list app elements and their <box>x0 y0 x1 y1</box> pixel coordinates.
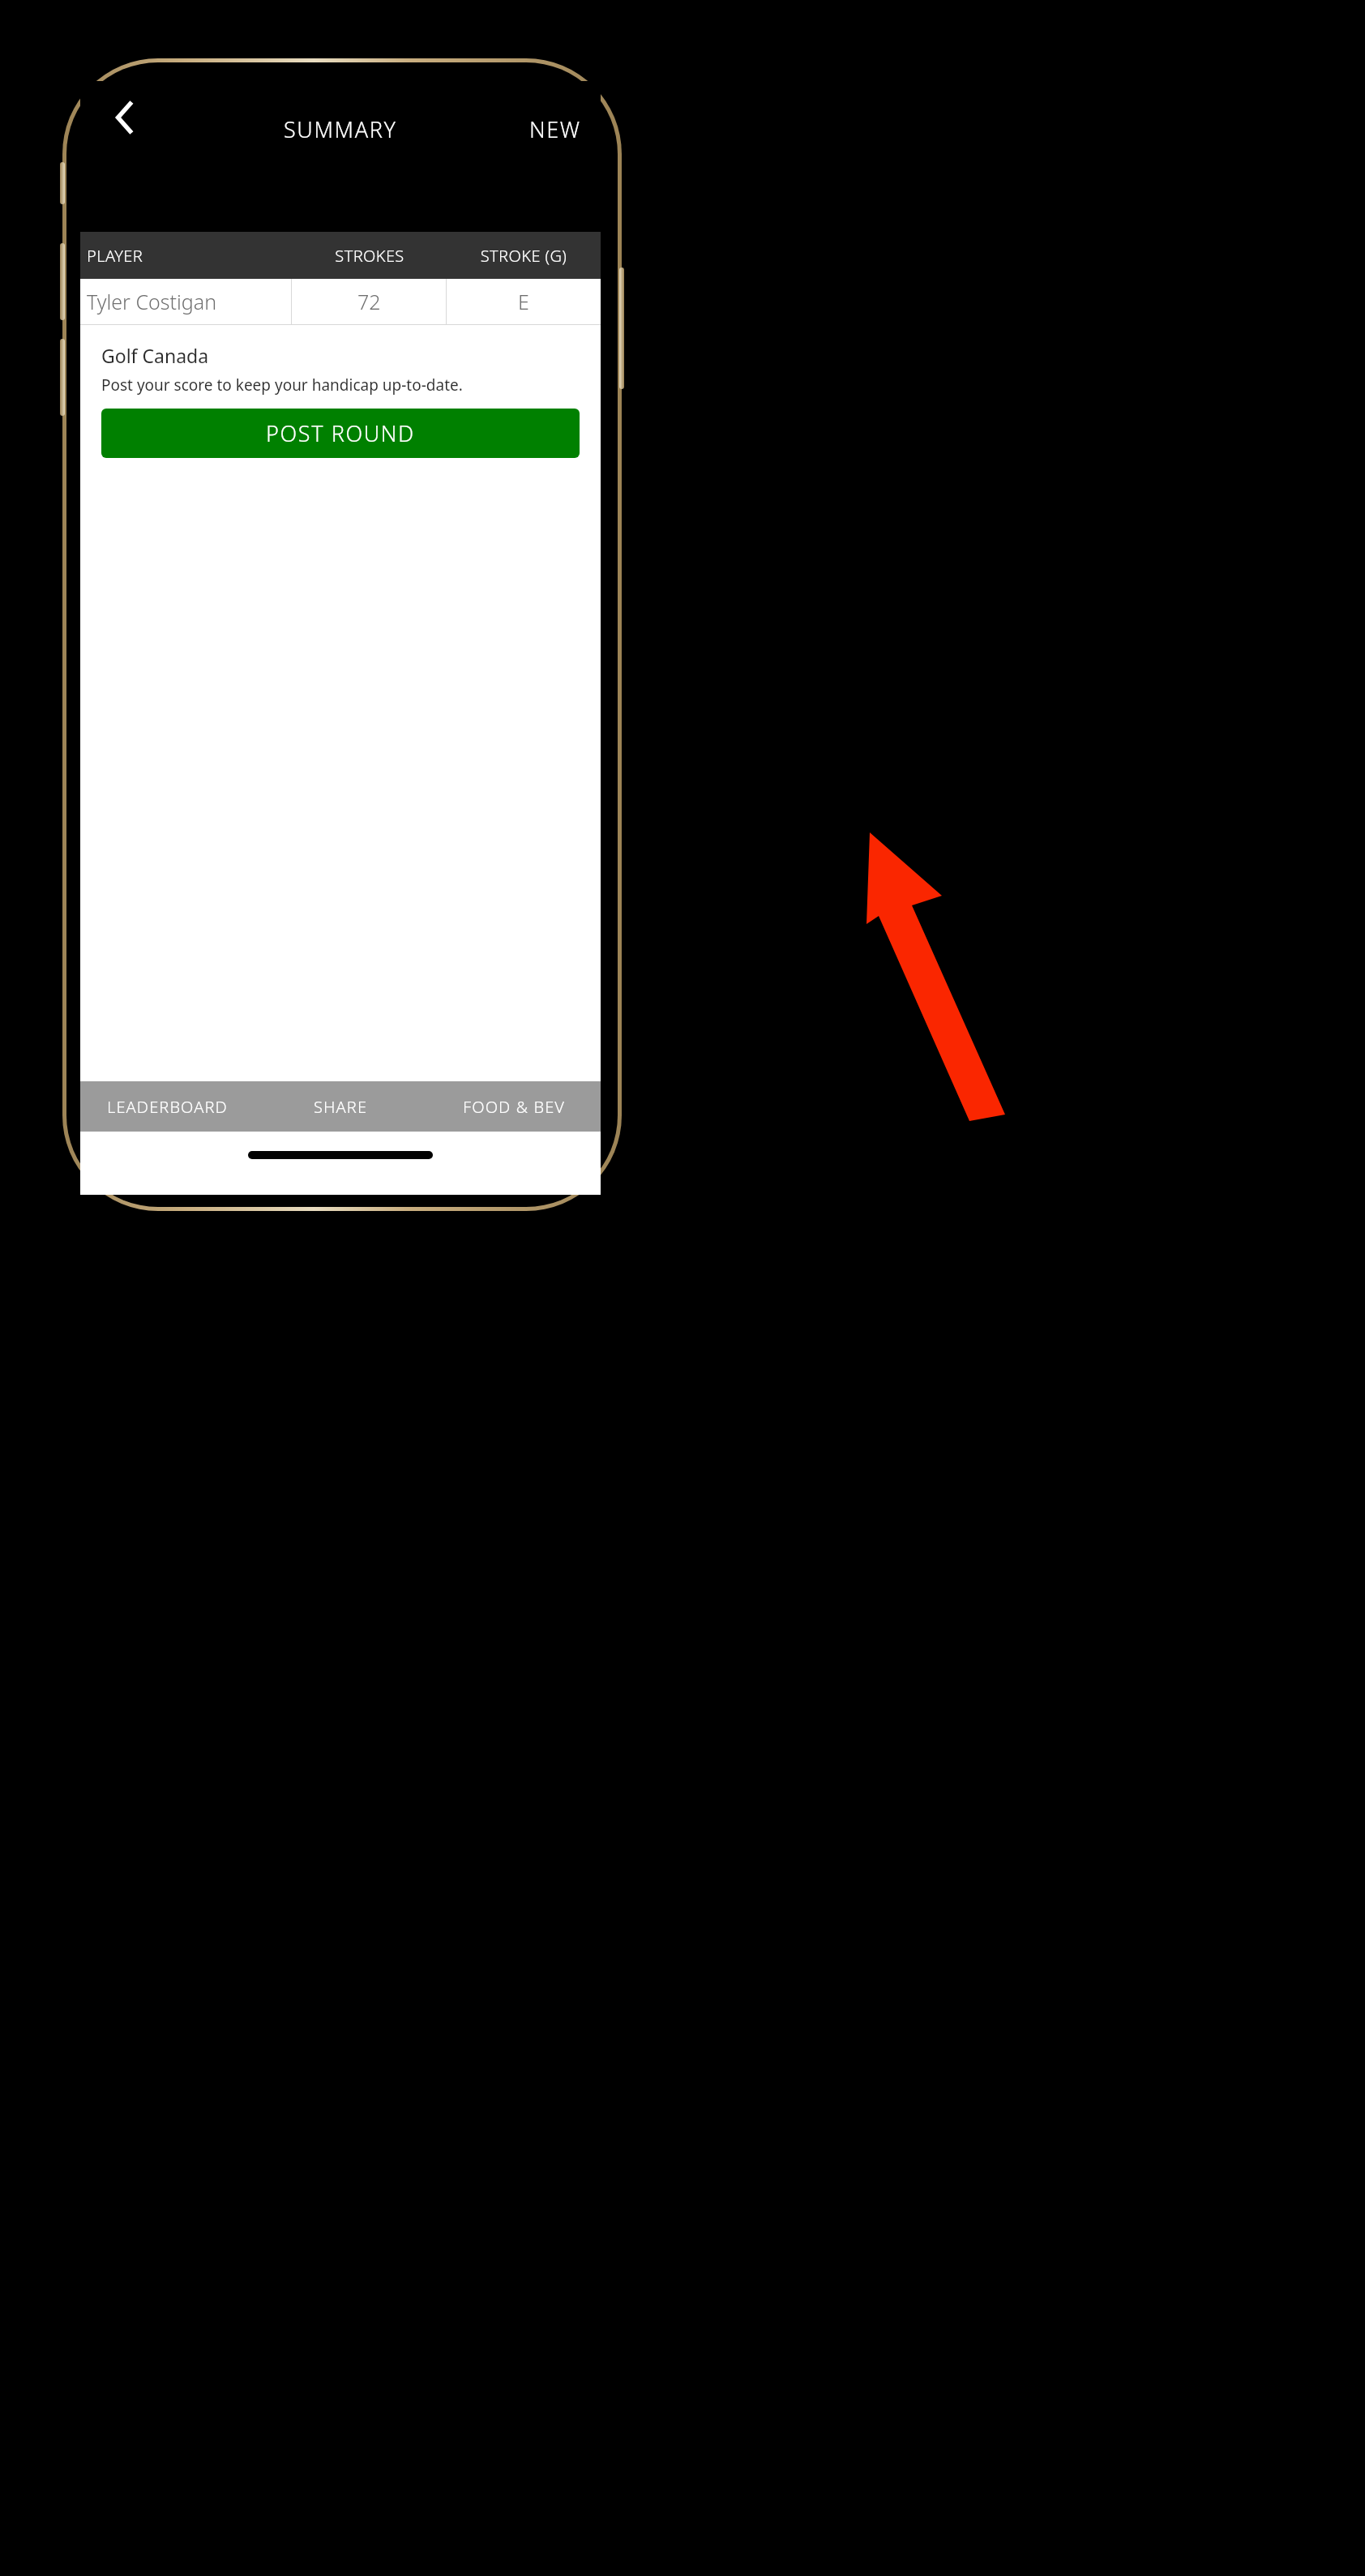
staticText: E <box>518 288 529 315</box>
staticText: SUMMARY <box>284 114 397 144</box>
staticText: STROKES <box>293 245 447 267</box>
staticText: LEADERBOARD <box>107 1096 228 1118</box>
button[interactable]: NEW <box>529 114 581 144</box>
button[interactable]: LEADERBOARD <box>80 1081 254 1132</box>
staticText: 11:28 <box>129 104 182 131</box>
staticText: NEW <box>529 114 581 144</box>
staticText: 72 <box>357 288 381 315</box>
staticText: Post your score to keep your handicap up… <box>101 374 463 396</box>
staticText: STROKE (G) <box>447 245 601 267</box>
staticText: POST ROUND <box>266 418 415 448</box>
staticText: Golf Canada <box>101 343 209 368</box>
staticText: PLAYER <box>87 245 293 267</box>
button[interactable]: SHARE <box>254 1081 427 1132</box>
button[interactable]: POST ROUND <box>101 409 580 458</box>
button[interactable]: FOOD & BEV <box>427 1081 601 1132</box>
staticText: SHARE <box>314 1096 368 1118</box>
staticText: Tyler Costigan <box>87 288 217 315</box>
staticText: FOOD & BEV <box>463 1096 566 1118</box>
button[interactable]: Tyler Costigan <box>80 279 601 324</box>
button[interactable]: Back <box>96 89 153 146</box>
